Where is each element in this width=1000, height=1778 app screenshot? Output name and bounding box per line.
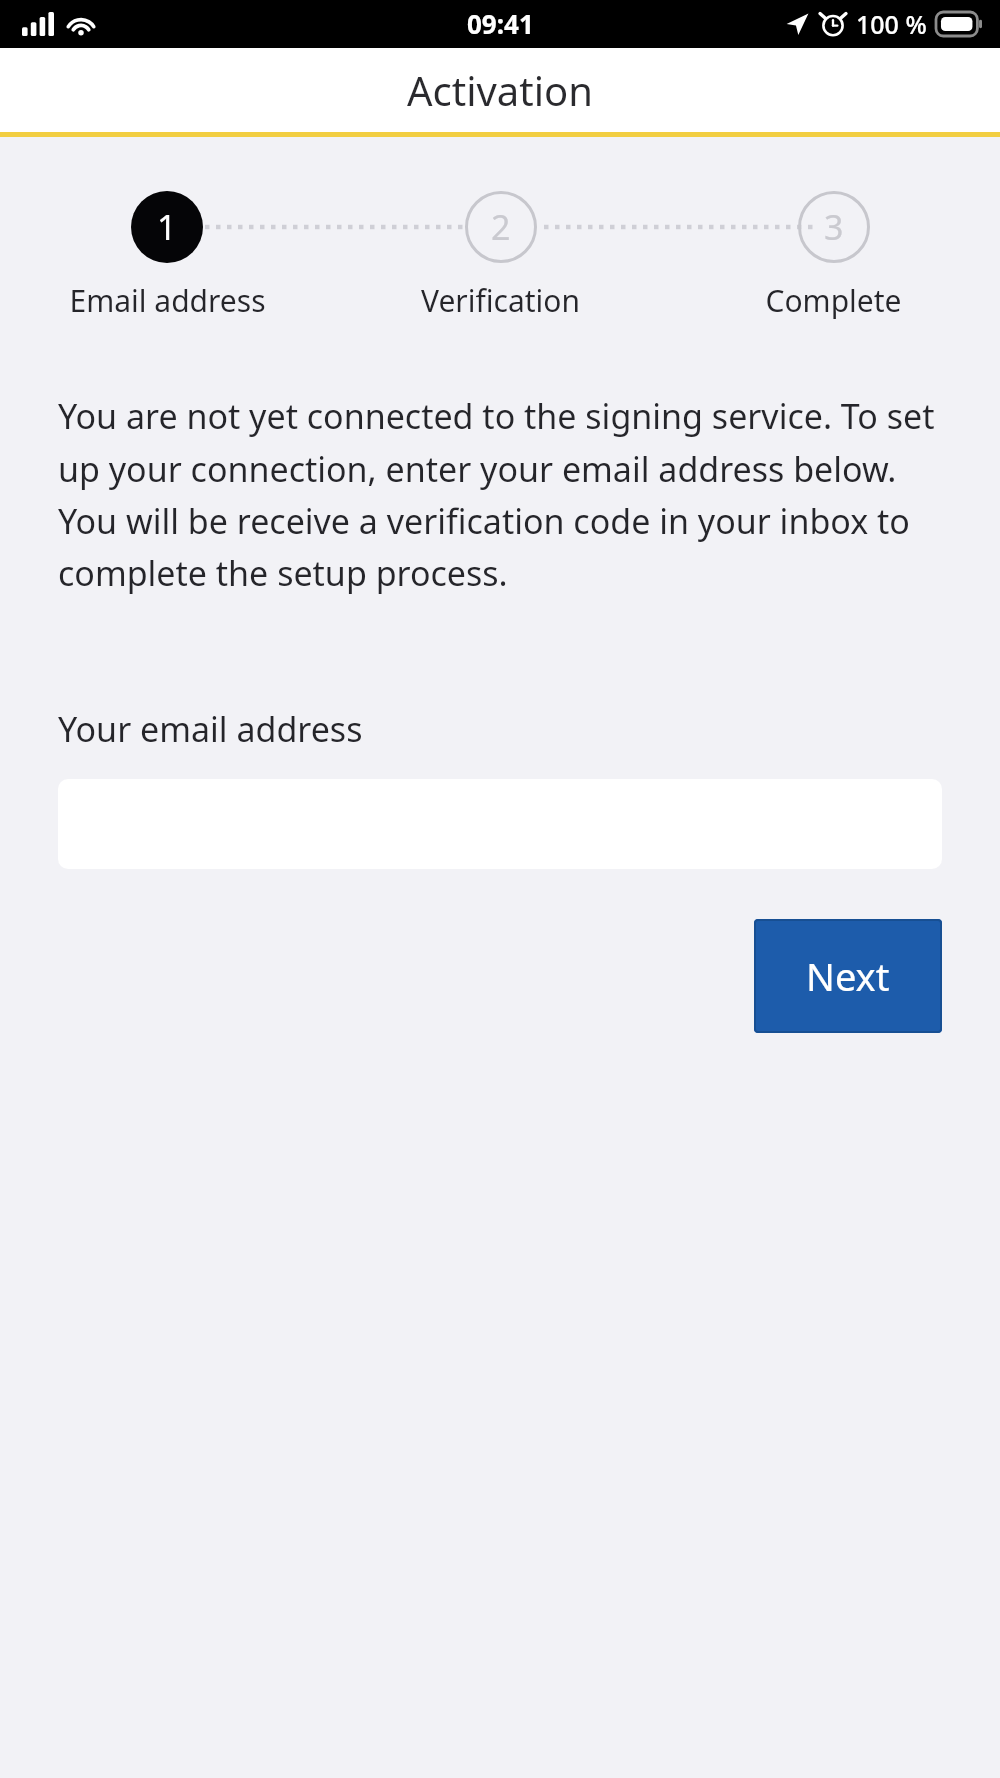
staticText: 09:41	[467, 6, 534, 41]
staticText: 1	[157, 204, 177, 250]
button[interactable]: 2	[334, 191, 667, 321]
staticText: Complete	[765, 280, 902, 321]
staticText: 100 %	[856, 7, 927, 41]
button[interactable]: Next	[754, 919, 942, 1033]
staticText: Your email address	[58, 706, 363, 752]
staticText: You are not yet connected to the signing…	[58, 393, 964, 596]
staticText: Email address	[69, 280, 266, 321]
staticText: Verification	[421, 280, 580, 321]
staticText: 3	[824, 204, 844, 250]
button[interactable]: 3	[667, 191, 1000, 321]
staticText: 2	[491, 204, 511, 250]
staticText: Next	[806, 950, 890, 1002]
button[interactable]: 1	[0, 191, 334, 321]
staticText: Activation	[407, 63, 593, 117]
